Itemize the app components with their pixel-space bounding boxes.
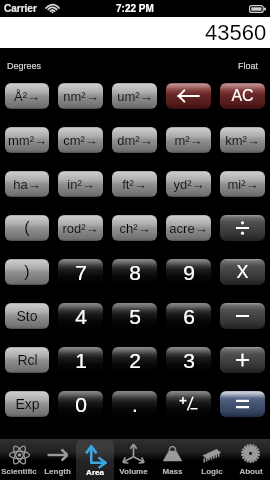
staticText: 4 (75, 305, 87, 328)
button[interactable]: Mass (153, 439, 192, 480)
button[interactable]: Area (76, 440, 114, 480)
staticText: acre→ (169, 221, 208, 236)
button[interactable]: Minus (220, 303, 265, 329)
button[interactable]: Length (38, 439, 76, 480)
staticText: 8 (129, 261, 141, 284)
staticText: 9 (183, 261, 195, 284)
button[interactable]: m²→ (166, 127, 211, 153)
staticText: 43560 (205, 20, 267, 45)
staticText: 7:22 PM (116, 3, 154, 14)
button[interactable]: ch²→ (112, 215, 157, 241)
staticText: Degrees (7, 61, 42, 71)
staticText: 7 (75, 261, 87, 284)
button[interactable]: Plus minus (166, 391, 211, 417)
button[interactable]: Rcl (5, 347, 49, 373)
button[interactable]: ha→ (5, 171, 49, 197)
staticText: yd²→ (173, 177, 205, 192)
staticText: Volume (119, 467, 148, 476)
button[interactable]: ft²→ (112, 171, 157, 197)
staticText: m²→ (174, 133, 203, 148)
staticText: rod²→ (62, 221, 99, 236)
staticText: ha→ (13, 177, 41, 192)
staticText: Sto (16, 308, 38, 324)
staticText: Carrier (4, 3, 37, 14)
button[interactable]: mm²→ (5, 127, 49, 153)
staticText: nm²→ (63, 89, 99, 104)
button[interactable]: in²→ (58, 171, 103, 197)
button[interactable]: yd²→ (166, 171, 211, 197)
staticText: ) (24, 263, 30, 281)
button[interactable]: dm²→ (112, 127, 157, 153)
staticText: 5 (129, 305, 141, 328)
staticText: AC (231, 87, 254, 105)
button[interactable]: . (112, 391, 157, 417)
staticText: 3 (183, 349, 195, 372)
button[interactable]: 0 (58, 391, 103, 417)
button[interactable]: Å²→ (5, 83, 49, 109)
staticText: Area (86, 468, 104, 477)
button[interactable]: 8 (112, 259, 157, 285)
staticText: ch²→ (119, 221, 151, 236)
button[interactable]: Divide (220, 215, 265, 241)
staticText: 6 (183, 305, 195, 328)
button[interactable]: Volume (114, 439, 153, 480)
button[interactable]: Equals (220, 391, 265, 417)
staticText: ft²→ (122, 177, 147, 192)
staticText: Å²→ (14, 89, 40, 104)
button[interactable]: Scientific (0, 439, 38, 480)
staticText: . (132, 393, 138, 416)
staticText: 0 (75, 393, 87, 416)
button[interactable]: ) (5, 259, 49, 285)
button[interactable]: Plus (220, 347, 265, 373)
staticText: dm²→ (117, 133, 153, 148)
staticText: Mass (162, 467, 183, 476)
button[interactable]: AC (220, 83, 265, 109)
button[interactable]: 7 (58, 259, 103, 285)
button[interactable]: ( (5, 215, 49, 241)
button[interactable]: 9 (166, 259, 211, 285)
button[interactable]: acre→ (166, 215, 211, 241)
button[interactable]: X (220, 259, 265, 285)
button[interactable]: 6 (166, 303, 211, 329)
staticText: About (239, 467, 263, 476)
staticText: cm²→ (63, 133, 98, 148)
staticText: Scientific (1, 467, 37, 476)
button[interactable]: Exp (5, 391, 49, 417)
staticText: mm²→ (8, 133, 47, 148)
staticText: in²→ (67, 177, 95, 192)
staticText: Logic (201, 467, 223, 476)
staticText: Length (44, 467, 71, 476)
button[interactable]: 1 (58, 347, 103, 373)
staticText: ( (24, 219, 30, 237)
button[interactable]: rod²→ (58, 215, 103, 241)
staticText: 1 (75, 349, 87, 372)
staticText: km²→ (225, 133, 260, 148)
button[interactable]: Sto (5, 303, 49, 329)
button[interactable]: About (231, 439, 270, 480)
staticText: 2 (129, 349, 141, 372)
button[interactable]: mi²→ (220, 171, 265, 197)
staticText: Exp (15, 396, 40, 412)
button[interactable]: 3 (166, 347, 211, 373)
button[interactable]: Backspace (166, 83, 211, 109)
staticText: X (236, 262, 249, 282)
staticText: um²→ (117, 89, 153, 104)
button[interactable]: 4 (58, 303, 103, 329)
button[interactable]: Logic (192, 439, 231, 480)
staticText: Rcl (17, 352, 38, 368)
button[interactable]: cm²→ (58, 127, 103, 153)
button[interactable]: nm²→ (58, 83, 103, 109)
staticText: mi²→ (227, 177, 259, 192)
button[interactable]: 2 (112, 347, 157, 373)
staticText: Float (238, 61, 259, 71)
button[interactable]: km²→ (220, 127, 265, 153)
button[interactable]: um²→ (112, 83, 157, 109)
button[interactable]: 5 (112, 303, 157, 329)
